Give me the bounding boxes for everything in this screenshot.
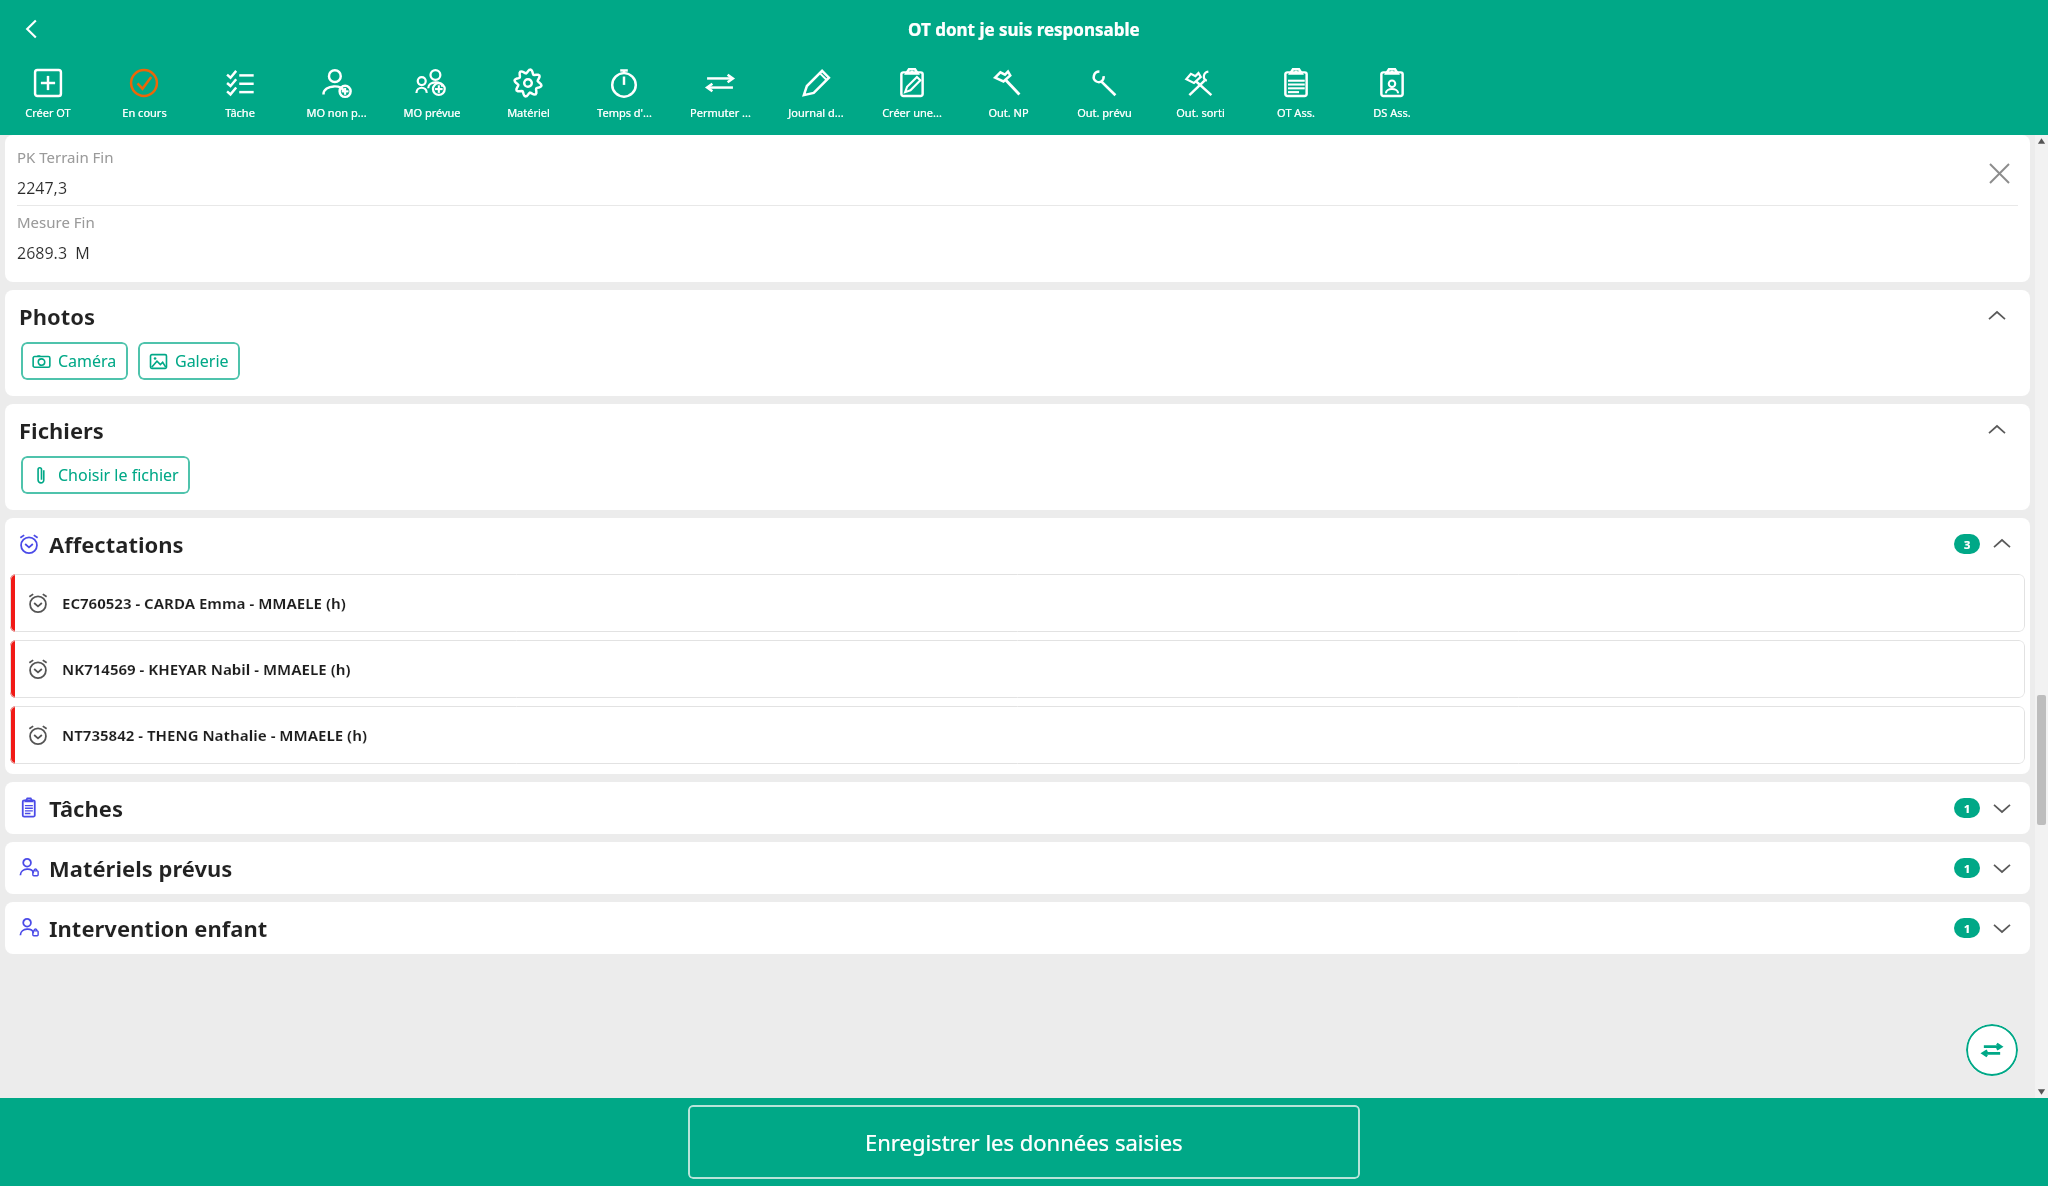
staticText: En cours xyxy=(122,105,167,120)
button[interactable]: PK Terrain Fin xyxy=(5,141,2030,205)
button[interactable]: Temps d'... xyxy=(576,58,672,135)
button[interactable]: Permuter xyxy=(1966,1024,2018,1076)
staticText: PK Terrain Fin xyxy=(17,147,114,167)
button[interactable]: Fichiers xyxy=(5,404,2030,456)
button[interactable]: NK714569 - KHEYAR Nabil - MMAELE (h) xyxy=(10,640,2025,698)
staticText: NK714569 - KHEYAR Nabil - MMAELE (h) xyxy=(62,659,351,679)
staticText: OT Ass. xyxy=(1277,105,1315,120)
other: Collapse xyxy=(1982,301,2012,331)
staticText: Créer OT xyxy=(25,105,71,120)
staticText: Matériel xyxy=(507,105,550,120)
staticText: OT dont je suis responsable xyxy=(908,18,1140,41)
staticText: 3 xyxy=(1964,537,1971,552)
staticText: Affectations xyxy=(49,529,184,559)
button[interactable]: Clear xyxy=(1982,156,2016,190)
button[interactable]: Photos xyxy=(5,290,2030,342)
button[interactable]: Journal d... xyxy=(768,58,864,135)
button[interactable]: Créer une... xyxy=(864,58,960,135)
button[interactable]: Tâche xyxy=(192,58,288,135)
staticText: 1 xyxy=(1964,921,1971,936)
staticText: Out. sorti xyxy=(1176,105,1225,120)
button[interactable]: Galerie xyxy=(138,342,240,380)
button[interactable]: Choisir le fichier xyxy=(21,456,190,494)
button[interactable]: Scroll down xyxy=(2037,1087,2046,1096)
staticText: Photos xyxy=(19,301,96,331)
staticText: Permuter ... xyxy=(690,105,751,120)
button[interactable]: Out. sorti xyxy=(1152,58,1248,135)
button[interactable]: Out. NP xyxy=(960,58,1056,135)
staticText: MO prévue xyxy=(403,105,461,120)
button[interactable]: Permuter ... xyxy=(672,58,768,135)
staticText: DS Ass. xyxy=(1373,105,1411,120)
button[interactable]: Scroll up xyxy=(2037,137,2046,146)
button[interactable]: Enregistrer les données saisies xyxy=(688,1105,1360,1179)
staticText: 1 xyxy=(1964,801,1971,816)
staticText: Journal d... xyxy=(788,105,844,120)
staticText: Temps d'... xyxy=(597,105,652,120)
staticText: Fichiers xyxy=(19,415,104,445)
staticText: Tâche xyxy=(225,105,255,120)
staticText: Out. NP xyxy=(988,105,1029,120)
other: Collapse xyxy=(1982,415,2012,445)
staticText: NT735842 - THENG Nathalie - MMAELE (h) xyxy=(62,725,368,745)
button[interactable]: DS Ass. xyxy=(1344,58,1440,135)
button[interactable]: Mesure Fin xyxy=(5,206,2030,270)
staticText: Enregistrer les données saisies xyxy=(865,1127,1183,1157)
staticText: Tâches xyxy=(49,793,123,823)
staticText: 2247,3 xyxy=(17,177,68,199)
staticText: Choisir le fichier xyxy=(58,464,179,486)
button[interactable]: Créer OT xyxy=(0,58,96,135)
staticText: 1 xyxy=(1964,861,1971,876)
staticText: Créer une... xyxy=(882,105,942,120)
button[interactable]: MO non p... xyxy=(288,58,384,135)
button[interactable]: Out. prévu xyxy=(1056,58,1152,135)
staticText: Out. prévu xyxy=(1077,105,1132,120)
staticText: EC760523 - CARDA Emma - MMAELE (h) xyxy=(62,593,346,613)
button[interactable]: Intervention enfant xyxy=(5,902,2030,954)
staticText: 2689.3 M xyxy=(17,242,90,264)
button[interactable]: Caméra xyxy=(21,342,128,380)
button[interactable]: OT Ass. xyxy=(1248,58,1344,135)
staticText: Galerie xyxy=(175,350,229,372)
staticText: MO non p... xyxy=(306,105,367,120)
button[interactable]: En cours xyxy=(96,58,192,135)
button[interactable]: Matériels prévus xyxy=(5,842,2030,894)
staticText: Intervention enfant xyxy=(49,913,268,943)
button[interactable]: Back xyxy=(8,5,56,53)
staticText: Caméra xyxy=(58,350,117,372)
button[interactable]: Affectations xyxy=(5,518,2030,570)
button[interactable]: Tâches xyxy=(5,782,2030,834)
button[interactable]: NT735842 - THENG Nathalie - MMAELE (h) xyxy=(10,706,2025,764)
button[interactable]: EC760523 - CARDA Emma - MMAELE (h) xyxy=(10,574,2025,632)
staticText: Matériels prévus xyxy=(49,853,233,883)
staticText: Mesure Fin xyxy=(17,212,95,232)
button[interactable]: MO prévue xyxy=(384,58,480,135)
button[interactable]: Matériel xyxy=(480,58,576,135)
